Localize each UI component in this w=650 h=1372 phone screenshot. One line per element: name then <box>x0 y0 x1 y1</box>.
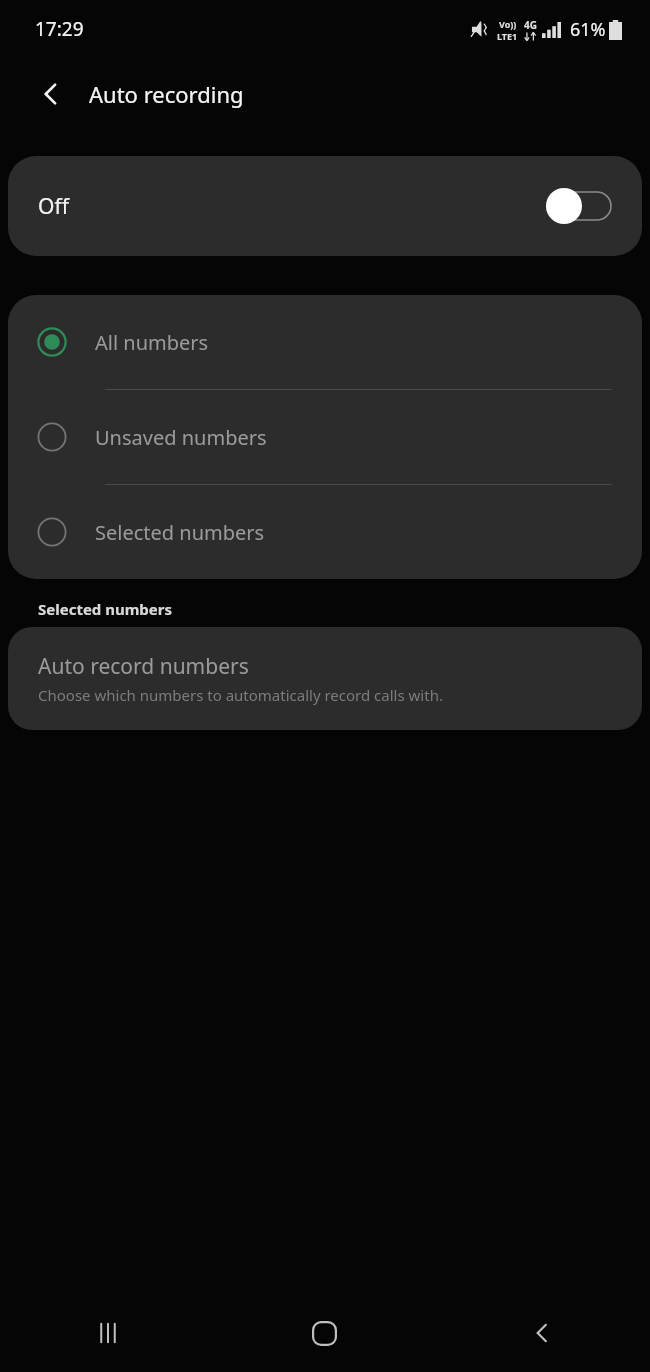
staticText: Unsaved numbers <box>95 424 267 451</box>
button[interactable]: Back <box>26 69 76 119</box>
staticText: Selected numbers <box>38 599 173 619</box>
button[interactable]: Off <box>8 156 642 256</box>
staticText: 61% <box>570 17 606 42</box>
button[interactable]: Auto record numbers <box>8 627 642 730</box>
staticText: Choose which numbers to automatically re… <box>38 685 443 705</box>
staticText: Auto recording <box>89 79 244 109</box>
staticText: LTE1 <box>497 30 518 42</box>
staticText: 4G <box>524 18 537 32</box>
button[interactable]: Selected numbers <box>8 485 642 579</box>
staticText: Selected numbers <box>95 519 265 546</box>
staticText: Auto record numbers <box>38 652 249 681</box>
button[interactable]: All numbers <box>8 295 642 389</box>
staticText: All numbers <box>95 329 209 356</box>
staticText: Vo)) <box>499 18 517 30</box>
button[interactable]: Home <box>216 1294 433 1372</box>
staticText: Off <box>38 192 546 221</box>
button[interactable]: Recents <box>0 1294 216 1372</box>
staticText: 17:29 <box>35 16 84 42</box>
button[interactable]: Back <box>433 1294 650 1372</box>
button[interactable]: Unsaved numbers <box>8 390 642 484</box>
